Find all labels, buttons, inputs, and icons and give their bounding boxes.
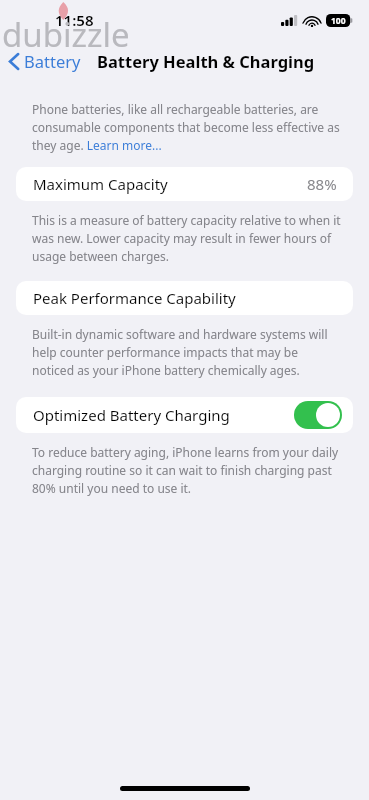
staticText: Phone batteries, like all rechargeable b… [32,100,343,154]
button[interactable]: Optimized Battery Charging toggle [294,401,342,429]
staticText: Built-in dynamic software and hardware s… [32,325,343,379]
staticText: 100 [331,15,346,27]
staticText: Maximum Capacity [33,174,168,194]
button[interactable]: Back [0,46,87,76]
other: Back [9,53,19,70]
staticText: Optimized Battery Charging [33,405,230,425]
staticText: Battery Health & Charging [97,50,315,72]
button[interactable]: Peak Performance Capability [16,281,353,315]
staticText: This is a measure of battery capacity re… [32,211,343,265]
button[interactable]: Optimized Battery Charging [16,397,353,433]
staticText: Peak Performance Capability [33,288,236,308]
staticText: 88% [307,174,337,194]
staticText: 11:58 [55,10,94,30]
staticText: Battery [24,50,81,72]
staticText: To reduce battery aging, iPhone learns f… [32,443,343,497]
button[interactable]: Maximum Capacity [16,167,353,201]
staticText: dubizzle [2,12,130,57]
